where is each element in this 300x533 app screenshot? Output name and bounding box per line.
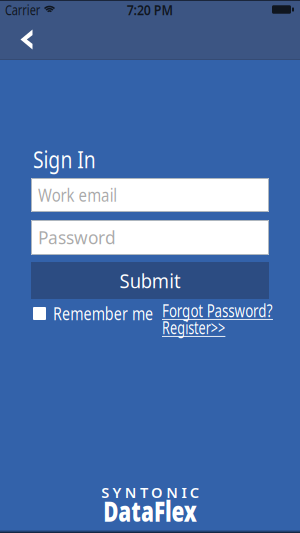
button[interactable]: Submit <box>31 262 269 299</box>
button[interactable]: Back <box>0 19 52 60</box>
button[interactable]: Forgot Password? <box>162 303 266 318</box>
staticText: Password <box>38 226 116 249</box>
staticText: Submit <box>117 267 183 294</box>
button[interactable]: Remember me <box>33 307 150 320</box>
button[interactable]: Work email <box>31 178 269 212</box>
staticText: DataFlex <box>78 489 222 532</box>
staticText: N <box>125 482 137 502</box>
button[interactable]: Password <box>31 220 269 255</box>
staticText: Remember me <box>53 302 175 325</box>
staticText: Sign In <box>33 143 111 175</box>
staticText: T <box>140 482 148 502</box>
staticText: Work email <box>38 183 129 206</box>
staticText: Register>> <box>162 316 249 339</box>
staticText: N <box>166 482 178 502</box>
staticText: Y <box>112 482 121 502</box>
button[interactable]: Register>> <box>162 320 221 335</box>
staticText: O <box>151 482 163 502</box>
staticText: 7:20 PM <box>122 0 177 19</box>
staticText: S <box>101 482 109 502</box>
staticText: C <box>190 482 199 502</box>
staticText: I <box>181 482 186 502</box>
staticText: Carrier <box>5 0 52 19</box>
staticText: Forgot Password? <box>162 299 300 322</box>
